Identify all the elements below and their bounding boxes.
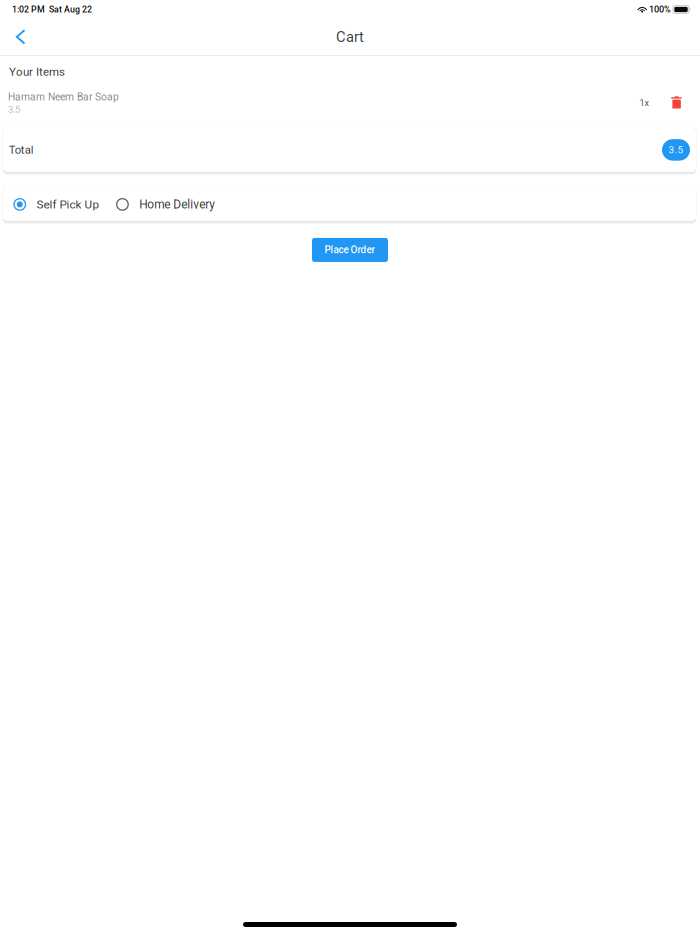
staticText: Self Pick Up xyxy=(36,197,99,211)
button[interactable]: Remove item xyxy=(668,93,685,113)
staticText: 100% xyxy=(647,4,671,15)
staticText: 3.5 xyxy=(8,104,20,115)
staticText: 1x xyxy=(639,98,648,108)
staticText: Your Items xyxy=(9,65,65,78)
staticText: Total xyxy=(9,143,34,157)
staticText: Home Delivery xyxy=(139,197,215,211)
button[interactable]: Back xyxy=(0,19,42,55)
staticText: 1:02 PM xyxy=(12,4,45,15)
staticText: Sat Aug 22 xyxy=(45,4,92,15)
button[interactable]: Place Order xyxy=(312,238,388,262)
button[interactable]: Home Delivery xyxy=(106,188,223,221)
staticText: 3.5 xyxy=(668,144,683,156)
staticText: Cart xyxy=(336,28,364,46)
staticText: Place Order xyxy=(324,244,375,256)
button[interactable]: Self Pick Up xyxy=(2,188,106,221)
staticText: Hamam Neem Bar Soap xyxy=(8,91,119,103)
